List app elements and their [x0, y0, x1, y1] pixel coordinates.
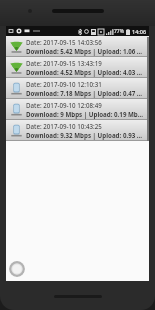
staticText: Date: 2017-09-15 14:03:56 [26, 38, 102, 46]
staticText: Date: 2017-09-15 13:43:19 [26, 59, 102, 67]
staticText: Date: 2017-09-10 10:43:25 [26, 122, 102, 130]
staticText: Download: 5.42 Mbps | Upload: 1.06 Mbps … [26, 47, 146, 55]
button[interactable]: Date: 2017-09-10 10:43:25 [6, 120, 149, 140]
button[interactable]: Date: 2017-09-15 13:43:19 [6, 57, 149, 77]
staticText: Date: 2017-09-10 12:08:49 [26, 101, 102, 109]
staticText: Download: 7.18 Mbps | Upload: 0.47 Mbps … [26, 89, 146, 97]
staticText: Date: 2017-09-10 12:10:31 [26, 80, 102, 88]
button[interactable]: Date: 2017-09-10 12:08:49 [6, 99, 149, 119]
staticText: 77% [114, 28, 124, 35]
button[interactable]: Date: 2017-09-15 14:03:56 [6, 36, 149, 56]
staticText: Download: 9.32 Mbps | Upload: 0.93 Mbps … [26, 131, 146, 139]
staticText: Download: 4.52 Mbps | Upload: 4.03 Mbps … [26, 68, 146, 76]
staticText: Download: 9 Mbps | Upload: 0.19 Mbps | P… [26, 110, 146, 118]
button[interactable]: Date: 2017-09-10 12:10:31 [6, 78, 149, 98]
staticText: 14:06 [132, 28, 147, 35]
button[interactable]: Start speed test [9, 261, 25, 277]
